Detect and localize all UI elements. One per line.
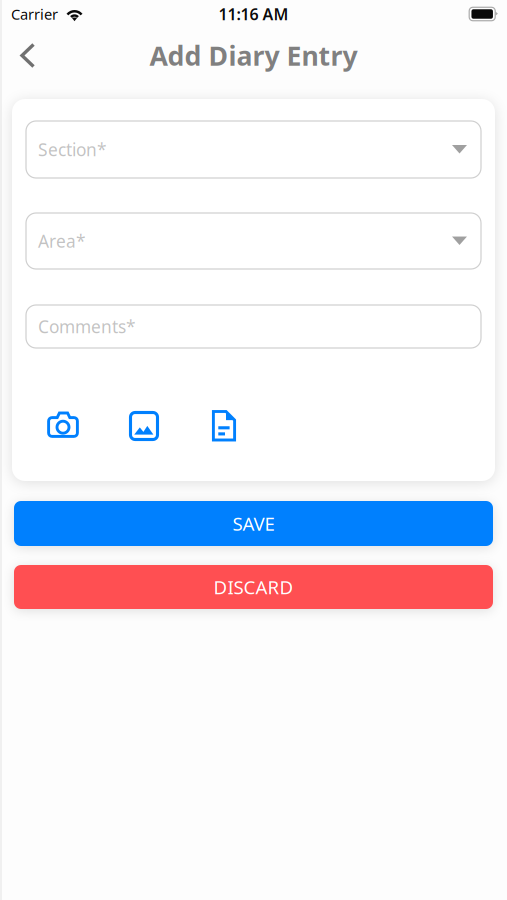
staticText: Section* [38, 138, 107, 161]
button[interactable]: DISCARD [14, 565, 493, 609]
staticText: Comments* [38, 315, 136, 338]
staticText: 11:16 AM [218, 3, 288, 25]
button[interactable]: Back [8, 33, 48, 77]
button[interactable]: Attach document [207, 409, 241, 443]
button[interactable]: Take photo [46, 409, 80, 443]
staticText: Add Diary Entry [149, 38, 357, 73]
button[interactable]: Area* [26, 213, 481, 269]
staticText: SAVE [232, 511, 274, 536]
button[interactable]: Section* [26, 121, 481, 178]
button[interactable]: Choose image [127, 409, 161, 443]
button[interactable]: SAVE [14, 501, 493, 546]
staticText: DISCARD [213, 575, 293, 599]
staticText: Area* [38, 229, 86, 252]
button[interactable]: Comments* [26, 305, 481, 348]
staticText: Carrier [11, 4, 58, 24]
